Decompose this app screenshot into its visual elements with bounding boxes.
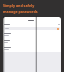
staticText: Simply and safely [3,3,35,8]
button[interactable] [3,31,61,38]
button[interactable]: Search [4,27,60,30]
staticText: manage passwords [3,9,38,14]
button[interactable] [3,38,61,45]
button[interactable] [3,45,61,52]
